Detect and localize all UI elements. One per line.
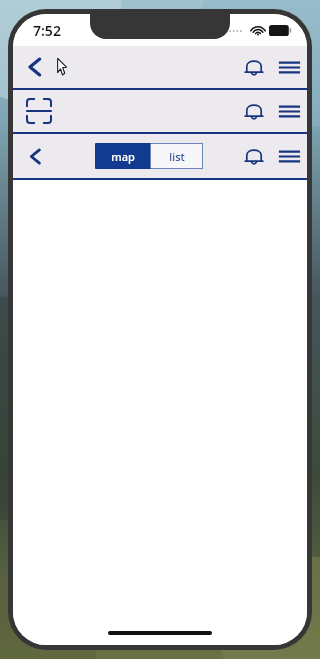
button[interactable]: list	[150, 143, 203, 169]
staticText: map	[111, 149, 135, 164]
button[interactable]: Back	[13, 134, 57, 178]
button[interactable]: Menu	[271, 136, 307, 176]
staticText: 7:52	[33, 21, 61, 40]
button[interactable]: Menu	[271, 47, 307, 87]
button[interactable]: Scan code	[13, 90, 65, 132]
button[interactable]: map	[95, 143, 150, 169]
staticText: list	[169, 149, 185, 164]
button[interactable]: Notifications	[237, 136, 271, 176]
button[interactable]: Back	[13, 46, 57, 88]
button[interactable]: Menu	[271, 91, 307, 131]
button[interactable]: Notifications	[237, 91, 271, 131]
button[interactable]: Notifications	[237, 47, 271, 87]
